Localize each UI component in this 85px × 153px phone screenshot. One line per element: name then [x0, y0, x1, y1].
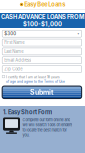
button[interactable]: Submit [2, 86, 82, 98]
staticText: $100-$1,000 [23, 21, 62, 28]
button[interactable]: Easy Bee Loans home [0, 0, 85, 9]
staticText: Email Address [4, 58, 31, 63]
staticText: Last Name [4, 49, 23, 54]
staticText: we will search 100s of lenders [22, 123, 72, 127]
staticText: to locate the best match for [22, 128, 66, 132]
button[interactable]: $300 [2, 30, 82, 37]
staticText: you. [22, 133, 29, 137]
button[interactable]: First Name [2, 39, 82, 46]
staticText: I certify that I am at least 18 years [6, 75, 60, 79]
staticText: $300 [4, 31, 16, 36]
button[interactable]: Zip Code [2, 66, 82, 73]
staticText: First Name [4, 40, 24, 45]
staticText: 1. Easy Short Form [3, 109, 52, 115]
staticText: Complete our form online and [22, 117, 70, 122]
button[interactable]: Last Name [2, 48, 82, 55]
staticText: of age and agree to the Terms of Use [6, 80, 65, 83]
button[interactable]: Email Address [2, 57, 82, 64]
staticText: ▾ [78, 32, 80, 35]
staticText: CASH ADVANCE LOANS FROM [1, 13, 84, 20]
staticText: Zip Code [4, 67, 22, 72]
staticText: Easy Bee Loans [24, 1, 65, 8]
button[interactable]: I certify that I am at least 18 years [2, 73, 82, 86]
staticText: Submit [30, 88, 54, 96]
